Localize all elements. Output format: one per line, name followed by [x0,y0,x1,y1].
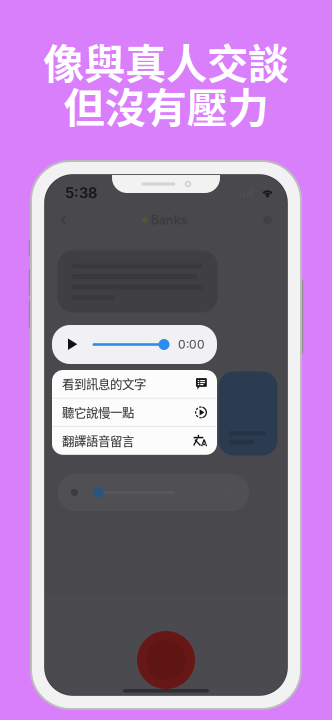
staticText: 但沒有壓力 [63,75,268,135]
button[interactable]: Play [64,332,82,356]
button[interactable]: 看到訊息的文字 [52,370,217,398]
staticText: 像與真人交談 [43,31,289,91]
button[interactable]: 翻譯語音留言 [52,427,217,455]
staticText: Banks [151,212,188,228]
staticText: 聽它說慢一點 [62,403,134,421]
button[interactable]: 聽它說慢一點 [52,398,217,426]
staticText: 翻譯語音留言 [62,432,134,450]
staticText: 看到訊息的文字 [62,375,146,393]
staticText: 0:00 [178,337,205,352]
staticText: 5:38 [65,184,97,202]
